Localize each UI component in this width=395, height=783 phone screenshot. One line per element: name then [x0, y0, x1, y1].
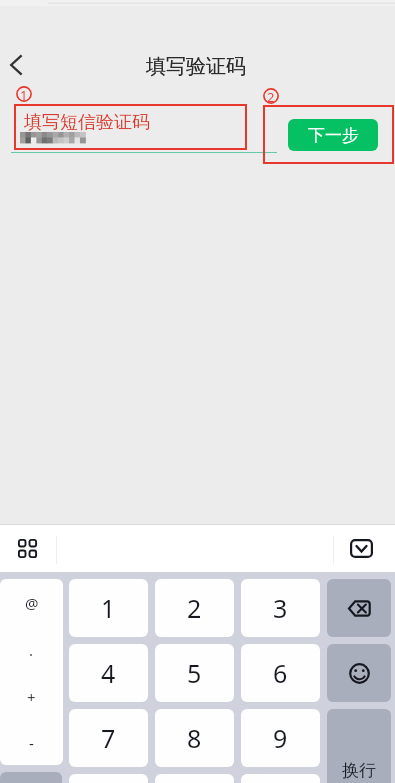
button[interactable]: 6 — [241, 644, 320, 702]
button[interactable]: Back — [0, 48, 33, 82]
button[interactable]: 3 — [241, 579, 320, 637]
staticText: 2 — [187, 591, 202, 625]
staticText: 换行 — [342, 760, 376, 781]
button[interactable]: Backspace — [327, 579, 391, 637]
button[interactable]: Keyboard layouts — [9, 530, 46, 567]
staticText: 填写验证码 — [146, 54, 246, 79]
button[interactable]: 5 — [155, 644, 234, 702]
staticText: + — [27, 687, 36, 707]
button[interactable]: 下一步 — [288, 119, 378, 151]
button[interactable]: - — [0, 720, 63, 765]
button[interactable]: @ — [0, 579, 63, 765]
staticText: 4 — [101, 656, 116, 690]
button[interactable] — [69, 774, 148, 783]
button[interactable]: 9 — [241, 709, 320, 767]
button[interactable] — [0, 772, 62, 783]
staticText: 3 — [273, 591, 288, 625]
button[interactable]: 4 — [69, 644, 148, 702]
staticText: 7 — [101, 721, 116, 755]
button[interactable]: . — [0, 626, 63, 673]
staticText: @ — [25, 593, 39, 613]
staticText: - — [29, 733, 34, 753]
button[interactable]: Hide keyboard — [343, 530, 380, 567]
staticText: 8 — [187, 721, 202, 755]
button[interactable]: 8 — [155, 709, 234, 767]
button[interactable]: @ — [0, 579, 63, 626]
staticText: . — [29, 640, 34, 660]
staticText: 填写短信验证码 — [24, 111, 150, 134]
button[interactable]: 7 — [69, 709, 148, 767]
staticText: 填写验证码 — [146, 54, 246, 79]
staticText: 5 — [187, 656, 202, 690]
button[interactable]: Emoji — [327, 644, 391, 702]
staticText: 1 — [101, 591, 116, 625]
staticText: 1 — [20, 86, 28, 102]
button[interactable] — [241, 774, 320, 783]
staticText: 6 — [273, 656, 288, 690]
staticText: 下一步 — [308, 125, 359, 146]
staticText: 2 — [267, 88, 275, 104]
button[interactable]: 换行 — [327, 709, 391, 783]
button[interactable]: 2 — [155, 579, 234, 637]
button[interactable]: + — [0, 673, 63, 720]
button[interactable]: 1 — [69, 579, 148, 637]
staticText: 9 — [273, 721, 288, 755]
button[interactable] — [155, 774, 234, 783]
